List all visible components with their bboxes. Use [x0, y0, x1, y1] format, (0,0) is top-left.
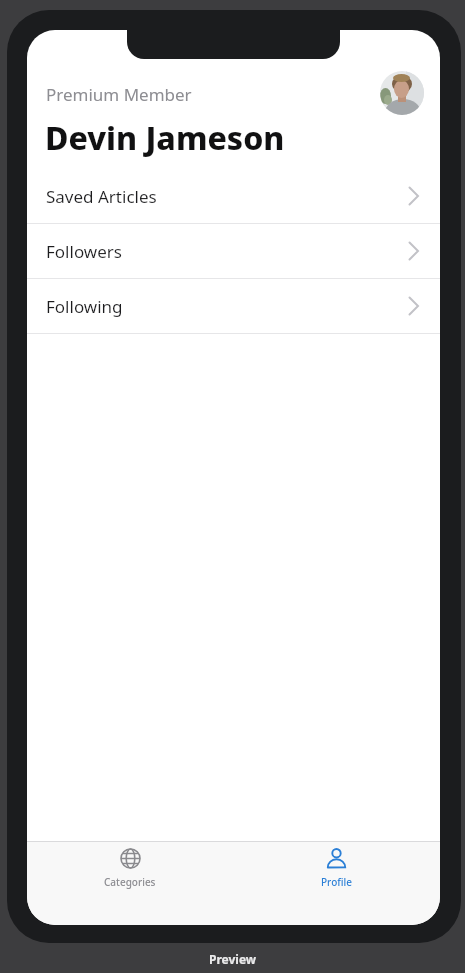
staticText: Premium Member	[46, 83, 192, 106]
button[interactable]: Categories	[27, 842, 233, 889]
staticText: Following	[46, 295, 123, 318]
button[interactable]	[380, 71, 424, 115]
staticText: Profile	[321, 875, 352, 889]
staticText: Saved Articles	[46, 185, 157, 208]
button[interactable]: Saved Articles	[27, 169, 440, 223]
button[interactable]: Following	[27, 279, 440, 333]
staticText: Followers	[46, 240, 122, 263]
staticText: Categories	[104, 875, 156, 889]
staticText: Preview	[209, 951, 257, 967]
staticText: Devin Jameson	[45, 116, 285, 160]
button[interactable]: Followers	[27, 224, 440, 278]
button[interactable]: Profile	[233, 842, 440, 889]
